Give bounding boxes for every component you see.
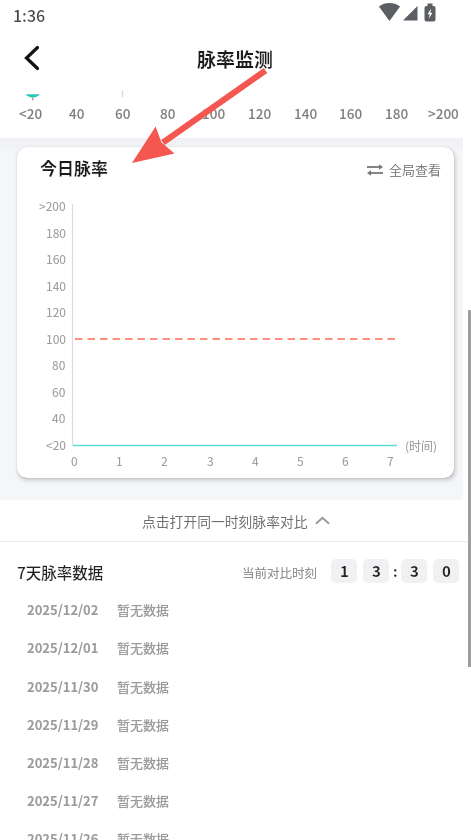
staticText: >200 xyxy=(39,197,66,214)
staticText: 120 xyxy=(46,303,66,320)
staticText: 1 xyxy=(340,560,349,582)
staticText: 120 xyxy=(248,103,272,123)
staticText: : xyxy=(393,561,398,581)
staticText: 7天脉率数据 xyxy=(17,561,104,583)
staticText: 140 xyxy=(294,103,318,123)
button[interactable]: 点击打开同一时刻脉率对比 xyxy=(0,500,471,541)
staticText: 0 xyxy=(442,560,451,582)
staticText: 0 xyxy=(71,452,78,469)
staticText: 160 xyxy=(46,250,66,267)
staticText: 100 xyxy=(46,330,66,347)
button[interactable]: 2025/11/26 xyxy=(0,819,471,840)
button[interactable]: 2025/11/28 xyxy=(0,743,471,781)
staticText: <20 xyxy=(46,436,66,453)
staticText: 1:36 xyxy=(13,3,46,26)
staticText: 暂无数据 xyxy=(117,791,170,810)
staticText: 1 xyxy=(116,452,123,469)
staticText: 当前对比时刻 xyxy=(242,563,318,581)
staticText: 今日脉率 xyxy=(40,155,108,180)
staticText: 180 xyxy=(46,224,66,241)
staticText: 2025/11/28 xyxy=(27,753,99,772)
button[interactable] xyxy=(16,40,52,72)
staticText: 2025/11/30 xyxy=(27,677,99,696)
staticText: 3 xyxy=(410,560,419,582)
staticText: 暂无数据 xyxy=(117,677,170,696)
staticText: (时间) xyxy=(405,437,438,454)
button[interactable]: 2025/11/29 xyxy=(0,705,471,743)
staticText: 40 xyxy=(69,103,85,123)
staticText: 80 xyxy=(52,356,66,373)
staticText: 3 xyxy=(207,452,214,469)
staticText: 2025/12/02 xyxy=(27,600,99,619)
staticText: <20 xyxy=(19,103,43,123)
button[interactable]: 2025/11/30 xyxy=(0,667,471,705)
staticText: 140 xyxy=(46,277,66,294)
staticText: 100 xyxy=(202,103,226,123)
staticText: 160 xyxy=(339,103,363,123)
staticText: 5 xyxy=(297,452,304,469)
staticText: 7 xyxy=(387,452,394,469)
staticText: 2025/11/29 xyxy=(27,715,99,734)
staticText: 2025/11/27 xyxy=(27,791,99,810)
button[interactable]: 2025/12/02 xyxy=(0,590,471,628)
staticText: 40 xyxy=(52,409,66,426)
staticText: 暂无数据 xyxy=(117,600,170,619)
staticText: 全局查看 xyxy=(389,160,442,179)
staticText: >200 xyxy=(428,103,459,123)
staticText: 60 xyxy=(52,383,66,400)
staticText: 2 xyxy=(161,452,168,469)
staticText: 60 xyxy=(115,103,131,123)
staticText: 180 xyxy=(385,103,409,123)
staticText: 2025/11/26 xyxy=(27,829,99,840)
staticText: 6 xyxy=(342,452,349,469)
staticText: 暂无数据 xyxy=(117,638,170,657)
staticText: 暂无数据 xyxy=(117,715,170,734)
staticText: 点击打开同一时刻脉率对比 xyxy=(142,511,308,531)
staticText: 3 xyxy=(372,560,381,582)
staticText: 2025/12/01 xyxy=(27,638,99,657)
button[interactable]: 全局查看 xyxy=(366,160,442,179)
staticText: 暂无数据 xyxy=(117,829,170,840)
staticText: 暂无数据 xyxy=(117,753,170,772)
staticText: 80 xyxy=(160,103,176,123)
button[interactable]: 2025/11/27 xyxy=(0,781,471,819)
staticText: 4 xyxy=(252,452,259,469)
staticText: 脉率监测 xyxy=(197,45,274,73)
button[interactable]: 2025/12/01 xyxy=(0,628,471,666)
